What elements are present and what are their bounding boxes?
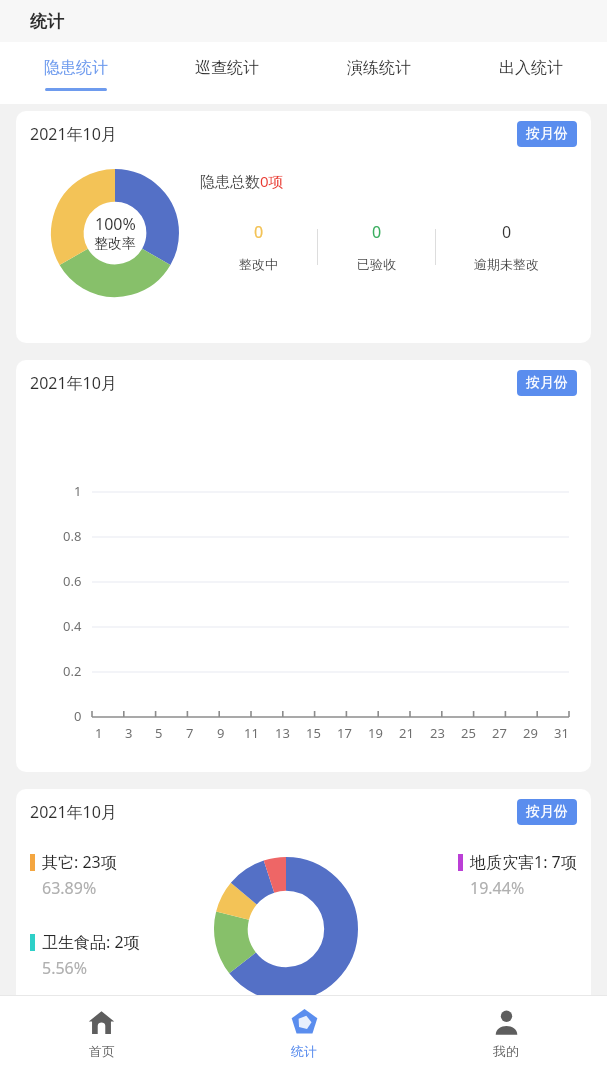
staticText: 2021年10月 bbox=[30, 801, 117, 823]
staticText: 地质灾害1: 7项 bbox=[470, 851, 577, 873]
staticText: 23 bbox=[430, 724, 445, 742]
button[interactable]: 0 bbox=[318, 221, 435, 272]
staticText: 整改率 bbox=[94, 235, 136, 253]
staticText: 0.6 bbox=[63, 572, 82, 590]
staticText: 巡查统计 bbox=[195, 58, 259, 78]
staticText: 1 bbox=[95, 724, 103, 742]
staticText: 7 bbox=[186, 724, 194, 742]
staticText: 19 bbox=[368, 724, 383, 742]
staticText: 0 bbox=[74, 707, 82, 725]
staticText: 统计 bbox=[291, 1043, 317, 1059]
button[interactable]: 统计 bbox=[203, 995, 405, 1080]
staticText: 17 bbox=[337, 724, 352, 742]
staticText: 卫生食品: 2项 bbox=[42, 931, 140, 953]
staticText: 3 bbox=[125, 724, 133, 742]
staticText: 按月份 bbox=[526, 803, 568, 821]
staticText: 0 bbox=[502, 221, 512, 243]
staticText: 0.2 bbox=[63, 662, 82, 680]
staticText: 5.56% bbox=[42, 957, 88, 979]
staticText: 2021年10月 bbox=[30, 372, 117, 394]
staticText: 按月份 bbox=[526, 374, 568, 392]
staticText: 31 bbox=[554, 724, 569, 742]
staticText: 0 bbox=[254, 221, 264, 243]
staticText: 100% bbox=[95, 213, 136, 235]
staticText: 0 bbox=[372, 221, 382, 243]
staticText: 隐患统计 bbox=[44, 58, 108, 78]
staticText: 首页 bbox=[89, 1043, 115, 1059]
button[interactable]: 巡查统计 bbox=[151, 42, 303, 104]
staticText: 11 bbox=[244, 724, 259, 742]
staticText: 隐患总数0项 bbox=[200, 171, 284, 191]
staticText: 25 bbox=[461, 724, 476, 742]
button[interactable]: 演练统计 bbox=[303, 42, 455, 104]
staticText: 1 bbox=[74, 482, 82, 500]
staticText: 2021年10月 bbox=[30, 123, 117, 145]
staticText: 按月份 bbox=[526, 125, 568, 143]
staticText: 出入统计 bbox=[499, 58, 563, 78]
staticText: 0.8 bbox=[63, 527, 82, 545]
button[interactable]: 按月份 bbox=[517, 799, 577, 825]
staticText: 13 bbox=[275, 724, 290, 742]
staticText: 9 bbox=[217, 724, 225, 742]
staticText: 演练统计 bbox=[347, 58, 411, 78]
staticText: 29 bbox=[523, 724, 538, 742]
staticText: 21 bbox=[399, 724, 414, 742]
staticText: 27 bbox=[492, 724, 507, 742]
button[interactable]: 首页 bbox=[0, 995, 203, 1080]
button[interactable]: 按月份 bbox=[517, 121, 577, 147]
staticText: 15 bbox=[306, 724, 321, 742]
staticText: 整改中 bbox=[239, 256, 278, 272]
staticText: 0.4 bbox=[63, 617, 82, 635]
staticText: 5 bbox=[155, 724, 163, 742]
button[interactable]: 出入统计 bbox=[455, 42, 607, 104]
button[interactable]: 我的 bbox=[405, 995, 607, 1080]
button[interactable]: 按月份 bbox=[517, 370, 577, 396]
staticText: 63.89% bbox=[42, 877, 97, 899]
staticText: 其它: 23项 bbox=[42, 851, 117, 873]
button[interactable]: 隐患统计 bbox=[0, 42, 151, 104]
staticText: 19.44% bbox=[470, 877, 525, 899]
staticText: 已验收 bbox=[357, 256, 396, 272]
staticText: 逾期未整改 bbox=[474, 256, 539, 272]
staticText: 统计 bbox=[30, 11, 64, 32]
button[interactable]: 0 bbox=[436, 221, 577, 272]
staticText: 我的 bbox=[493, 1043, 519, 1059]
button[interactable]: 0 bbox=[200, 221, 317, 272]
